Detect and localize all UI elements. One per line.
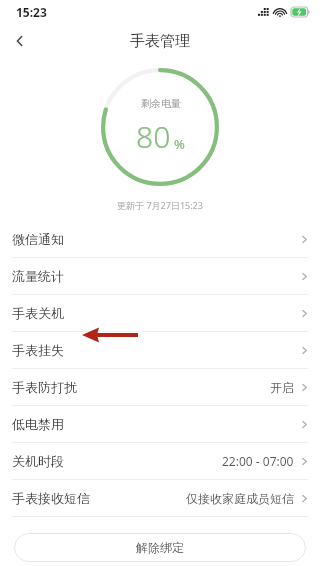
staticText: 手表挂失 [12, 342, 64, 358]
staticText: 22:00 - 07:00 [222, 453, 294, 469]
button[interactable]: 手表防打扰 [0, 369, 320, 405]
button[interactable]: 低电禁用 [0, 406, 320, 442]
button[interactable]: 解除绑定 [14, 533, 306, 562]
staticText: 手表关机 [12, 305, 64, 321]
staticText: 低电禁用 [12, 416, 64, 432]
button[interactable]: 关机时段 [0, 443, 320, 479]
staticText: 剩余电量 [141, 97, 181, 110]
staticText: 关机时段 [12, 453, 64, 469]
staticText: 80 [136, 116, 171, 157]
staticText: 流量统计 [12, 268, 64, 284]
staticText: 手表接收短信 [12, 490, 90, 506]
button[interactable]: 流量统计 [0, 258, 320, 294]
staticText: 更新于 7月27日15:23 [117, 199, 203, 211]
staticText: 15:23 [16, 4, 47, 20]
button[interactable]: Back [0, 24, 40, 58]
staticText: 解除绑定 [136, 540, 184, 555]
button[interactable]: 微信通知 [0, 221, 320, 257]
button[interactable]: 手表关机 [0, 295, 320, 331]
staticText: % [174, 135, 185, 153]
staticText: 开启 [270, 380, 294, 395]
button[interactable]: 手表挂失 [0, 332, 320, 368]
staticText: 仅接收家庭成员短信 [186, 491, 294, 506]
staticText: 微信通知 [12, 231, 64, 247]
staticText: 手表管理 [130, 32, 190, 51]
staticText: 手表防打扰 [12, 379, 77, 395]
button[interactable]: 手表接收短信 [0, 480, 320, 516]
